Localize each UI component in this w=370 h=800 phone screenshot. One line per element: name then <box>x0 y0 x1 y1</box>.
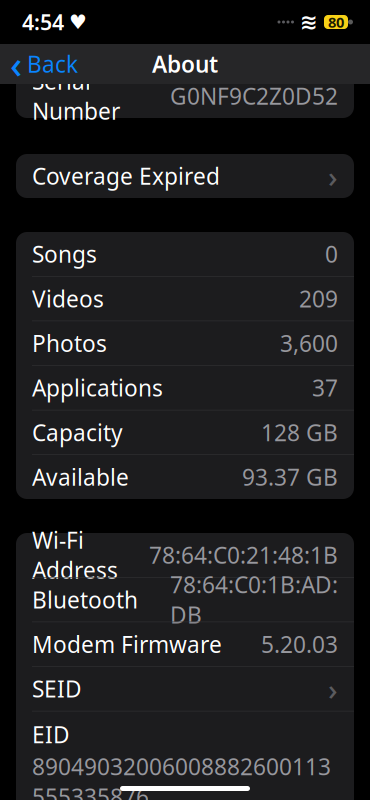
staticText: 209 <box>299 283 338 314</box>
staticText: ≋ <box>300 10 318 34</box>
staticText: About <box>152 49 218 79</box>
staticText: SEID <box>32 674 82 704</box>
staticText: Available <box>32 462 129 492</box>
staticText: Applications <box>32 373 163 403</box>
staticText: Back <box>27 49 78 79</box>
staticText: 4:54 <box>22 8 64 36</box>
staticText: Coverage Expired <box>32 161 220 191</box>
staticText: Modem Firmware <box>32 629 222 659</box>
staticText: ‹ <box>10 39 22 89</box>
staticText: Videos <box>32 283 104 314</box>
staticText: Photos <box>32 328 107 358</box>
staticText: EID <box>32 719 70 749</box>
staticText: 78:64:C0:1B:AD:DB <box>170 569 338 630</box>
staticText: › <box>328 156 338 195</box>
button[interactable]: SEID <box>16 667 354 711</box>
staticText: G0NF9C2Z0D52 <box>170 81 338 111</box>
staticText: › <box>328 669 338 708</box>
staticText: Bluetooth <box>32 584 138 615</box>
staticText: 3,600 <box>280 328 338 358</box>
staticText: 93.37 GB <box>242 462 338 492</box>
staticText: 89049032006008882600113555335876 <box>32 751 331 800</box>
staticText: Wi-Fi Address <box>32 525 118 585</box>
staticText: 80 <box>328 12 344 32</box>
staticText: 78:64:C0:21:48:1B <box>149 540 338 570</box>
staticText: Capacity <box>32 417 123 447</box>
staticText: ♥ <box>69 11 87 33</box>
staticText: Serial Number <box>32 66 120 126</box>
button[interactable]: Coverage Expired <box>16 154 354 198</box>
staticText: 0 <box>325 239 338 269</box>
staticText: 128 GB <box>261 417 338 447</box>
staticText: 5.20.03 <box>261 629 338 659</box>
button[interactable]: ‹ <box>0 33 78 95</box>
staticText: Songs <box>32 239 97 269</box>
staticText: 37 <box>312 373 338 403</box>
